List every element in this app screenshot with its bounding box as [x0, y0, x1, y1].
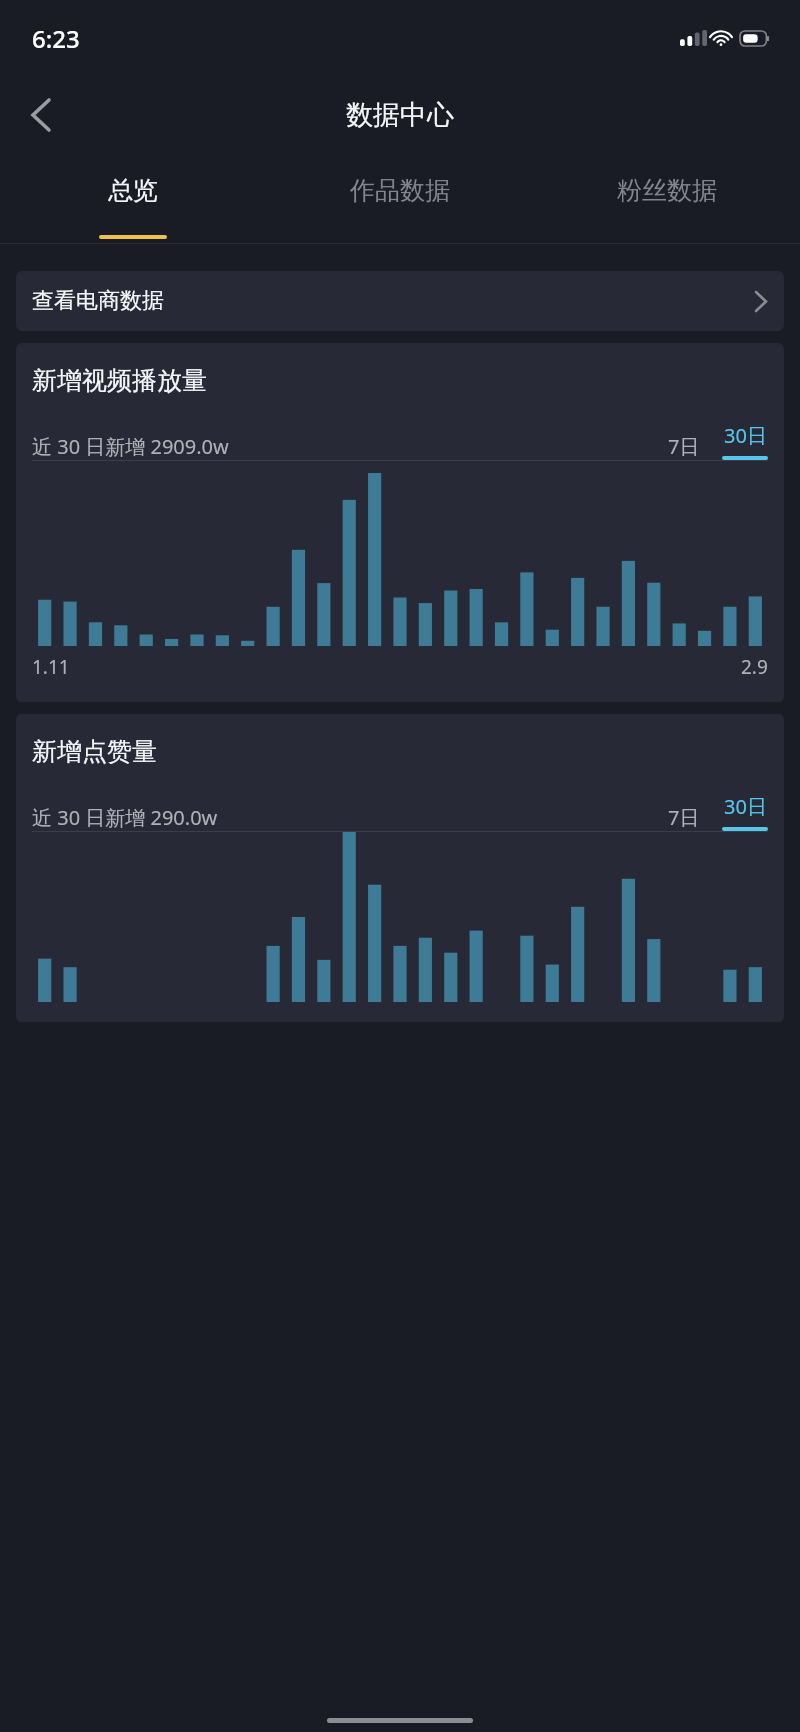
staticText: 6:23 — [32, 22, 80, 55]
staticText: 新增视频播放量 — [32, 365, 207, 396]
button[interactable]: 7日 — [664, 804, 704, 831]
staticText: 作品数据 — [350, 175, 450, 206]
button[interactable]: 粉丝数据 — [533, 154, 800, 244]
staticText: 近 30 日新增 290.0w — [32, 804, 218, 831]
button[interactable]: 查看电商数据 — [16, 271, 784, 331]
staticText: 2.9 — [741, 654, 768, 680]
staticText: 7日 — [668, 433, 700, 460]
staticText: 查看电商数据 — [32, 287, 164, 315]
button[interactable]: 30日 — [722, 793, 768, 831]
button[interactable]: 7日 — [664, 433, 704, 460]
staticText: 总览 — [108, 175, 158, 206]
staticText: 数据中心 — [346, 98, 454, 132]
staticText: 30日 — [724, 422, 767, 449]
staticText: 7日 — [668, 804, 700, 831]
staticText: 粉丝数据 — [617, 175, 717, 206]
button[interactable]: 作品数据 — [266, 154, 533, 244]
staticText: 近 30 日新增 2909.0w — [32, 433, 229, 460]
button[interactable]: Back — [10, 84, 72, 146]
staticText: 新增点赞量 — [32, 736, 157, 767]
staticText: 30日 — [724, 793, 767, 820]
button[interactable]: 30日 — [722, 422, 768, 460]
button[interactable]: 总览 — [0, 154, 266, 244]
staticText: 1.11 — [32, 654, 70, 680]
